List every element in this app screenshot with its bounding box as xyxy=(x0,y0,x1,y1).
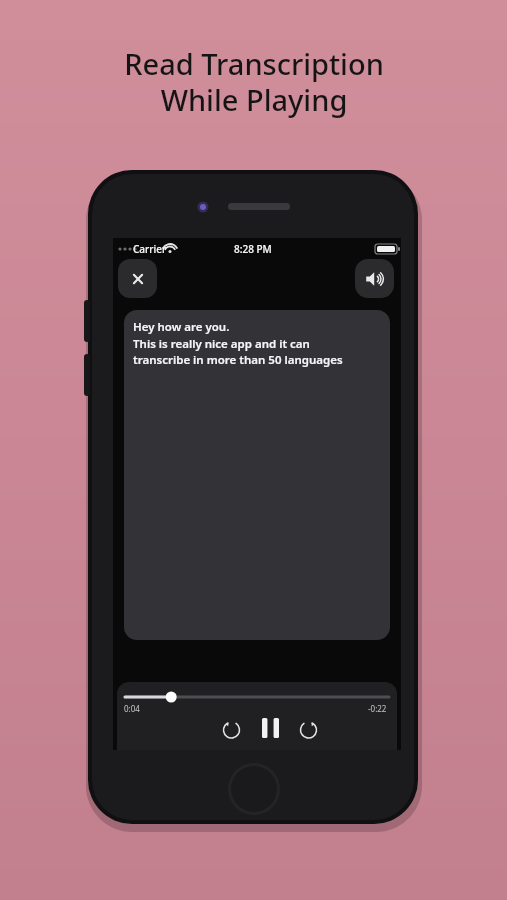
button[interactable]: Rewind 15 seconds xyxy=(217,715,245,743)
button[interactable]: Speaker volume xyxy=(355,259,394,298)
button[interactable]: Hey how are you. This is really nice app… xyxy=(124,310,390,640)
staticText: 0:04 xyxy=(124,703,140,714)
staticText: Read Transcription While Playing xyxy=(124,44,384,120)
button[interactable]: Close xyxy=(118,259,157,298)
staticText: 8:28 PM xyxy=(234,242,272,256)
button[interactable]: Pause xyxy=(255,713,285,743)
button[interactable]: Forward 15 seconds xyxy=(294,715,322,743)
staticText: Hey how are you. This is really nice app… xyxy=(133,319,343,367)
staticText: Carrier xyxy=(133,242,167,256)
staticText: -0:22 xyxy=(368,703,387,714)
